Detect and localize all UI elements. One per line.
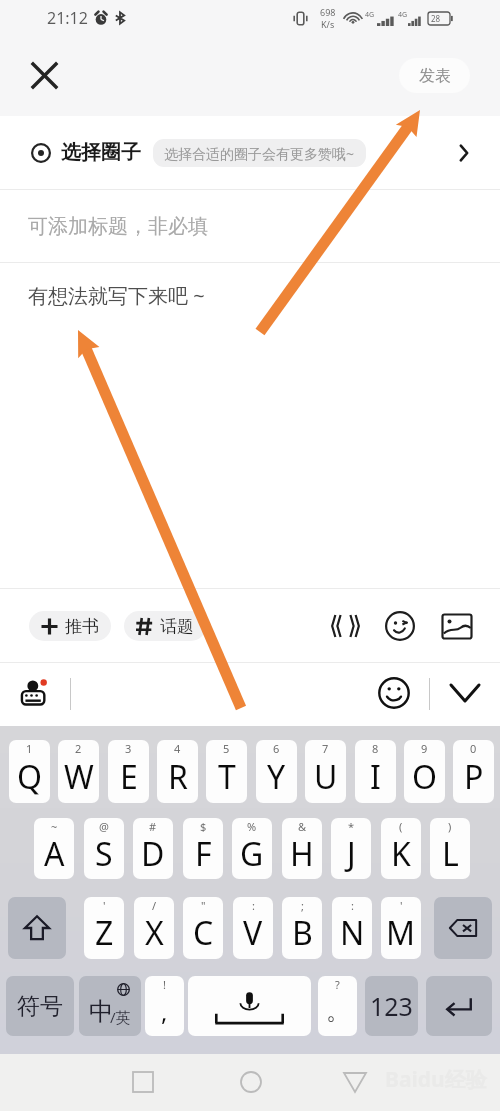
staticText: 3 [125, 741, 132, 756]
button[interactable]: 123 [365, 976, 418, 1036]
button[interactable]: # [133, 818, 173, 879]
staticText: " [201, 898, 206, 913]
button[interactable]: ) [430, 818, 470, 879]
button[interactable]: ? [318, 976, 357, 1036]
staticText: % [247, 819, 257, 834]
staticText: 698 [320, 6, 336, 18]
staticText: J [347, 832, 356, 876]
staticText: G [240, 832, 264, 876]
button[interactable]: Enter [426, 976, 492, 1036]
staticText: H [290, 832, 314, 876]
staticText: P [464, 755, 484, 799]
staticText: N [340, 911, 365, 955]
staticText: 发表 [419, 66, 451, 86]
staticText: @ [99, 819, 109, 834]
staticText: / [152, 898, 157, 913]
staticText: ) [448, 819, 452, 834]
staticText: L [442, 832, 459, 876]
button[interactable]: ( [381, 818, 421, 879]
staticText: & [298, 819, 307, 834]
button[interactable]: 9 [404, 740, 445, 803]
button[interactable]: 话题 [124, 611, 206, 641]
button[interactable]: : [233, 897, 273, 959]
button[interactable]: ! [145, 976, 184, 1036]
staticText: 4 [174, 741, 181, 756]
button[interactable]: @ [84, 818, 124, 879]
staticText: , [161, 995, 168, 1028]
button[interactable]: Quote [325, 606, 365, 646]
staticText: 6 [273, 741, 280, 756]
staticText: 123 [370, 989, 413, 1023]
staticText: U [314, 755, 338, 799]
button[interactable]: 6 [256, 740, 297, 803]
staticText: 符号 [17, 992, 63, 1021]
staticText: V [243, 911, 263, 955]
staticText: Z [95, 911, 114, 955]
staticText: 4G [398, 10, 408, 20]
button[interactable]: Emoji [380, 606, 420, 646]
button[interactable]: 发表 [399, 58, 470, 93]
button[interactable]: 1 [9, 740, 50, 803]
staticText: 7 [322, 741, 329, 756]
staticText: 4G [365, 10, 375, 20]
button[interactable]: 7 [305, 740, 346, 803]
button[interactable]: Image [437, 606, 477, 646]
staticText: 话题 [160, 616, 194, 637]
button[interactable]: 选择圈子 [0, 116, 500, 189]
staticText: $ [200, 819, 207, 834]
staticText: ; [301, 898, 304, 913]
button[interactable]: ' [381, 897, 421, 959]
staticText: * [348, 819, 355, 834]
staticText: /英 [110, 1007, 131, 1027]
button[interactable]: Space [188, 976, 311, 1036]
button[interactable]: ; [282, 897, 322, 959]
staticText: C [193, 911, 214, 955]
staticText: W [64, 755, 94, 799]
staticText: E [120, 755, 138, 799]
staticText: ' [400, 898, 403, 913]
button[interactable]: Recents [120, 1059, 166, 1105]
button[interactable]: ' [84, 897, 124, 959]
button[interactable]: Switch keyboard [14, 671, 58, 715]
button[interactable]: Shift [8, 897, 66, 959]
button[interactable]: Hide keyboard [443, 671, 487, 715]
button[interactable]: : [332, 897, 372, 959]
button[interactable]: / [134, 897, 174, 959]
staticText: 1 [26, 741, 33, 756]
staticText: 2 [75, 741, 82, 756]
button[interactable]: ~ [34, 818, 74, 879]
button[interactable]: 4 [157, 740, 198, 803]
button[interactable]: Back [332, 1059, 378, 1105]
button[interactable]: % [232, 818, 272, 879]
button[interactable]: 推书 [29, 611, 111, 641]
button[interactable]: $ [183, 818, 223, 879]
staticText: F [195, 832, 212, 876]
staticText: I [370, 755, 381, 799]
button[interactable]: * [331, 818, 371, 879]
button[interactable]: Backspace [434, 897, 492, 959]
button[interactable]: Close [22, 53, 66, 97]
button[interactable]: 符号 [6, 976, 74, 1036]
button[interactable]: 2 [58, 740, 99, 803]
button[interactable]: 3 [108, 740, 149, 803]
staticText: K/s [321, 18, 335, 30]
staticText: # [149, 819, 157, 834]
button[interactable]: 8 [355, 740, 396, 803]
button[interactable]: Chinese English toggle [79, 976, 141, 1036]
staticText: A [44, 832, 65, 876]
staticText: 有想法就写下来吧 ~ [28, 282, 205, 309]
staticText: O [412, 755, 437, 799]
button[interactable]: 0 [453, 740, 494, 803]
staticText: B [292, 911, 313, 955]
staticText: 8 [372, 741, 379, 756]
button[interactable]: & [282, 818, 322, 879]
staticText: 选择合适的圈子会有更多赞哦~ [164, 144, 355, 163]
button[interactable]: Home [228, 1059, 274, 1105]
button[interactable]: " [183, 897, 223, 959]
button[interactable]: 5 [206, 740, 247, 803]
staticText: Y [267, 755, 286, 799]
staticText: 中 [89, 996, 114, 1027]
button[interactable]: Emoji [372, 671, 416, 715]
staticText: S [95, 832, 113, 876]
